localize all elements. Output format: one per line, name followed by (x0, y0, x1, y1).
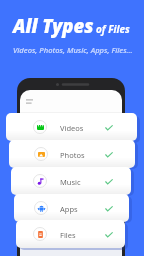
staticText: Photos (60, 150, 85, 160)
other: Selected (105, 206, 113, 212)
staticText: Apps (60, 204, 78, 214)
other: Selected (105, 232, 113, 238)
staticText: of Files (96, 22, 130, 36)
staticText: Videos, Photos, Music, Apps, Files... (13, 45, 133, 55)
button[interactable]: Files (16, 220, 125, 248)
button[interactable]: Photos (9, 140, 135, 168)
other: Selected (105, 152, 113, 158)
button[interactable]: Videos (6, 113, 137, 141)
other: Selected (105, 125, 113, 131)
button[interactable]: Music (11, 167, 131, 195)
button[interactable]: Apps (14, 194, 129, 222)
staticText: All Types (13, 13, 94, 38)
staticText: Videos (60, 123, 84, 133)
staticText: Music (60, 177, 81, 187)
staticText: Files (60, 230, 76, 240)
other: Selected (105, 179, 113, 185)
other: Menu (26, 99, 33, 104)
